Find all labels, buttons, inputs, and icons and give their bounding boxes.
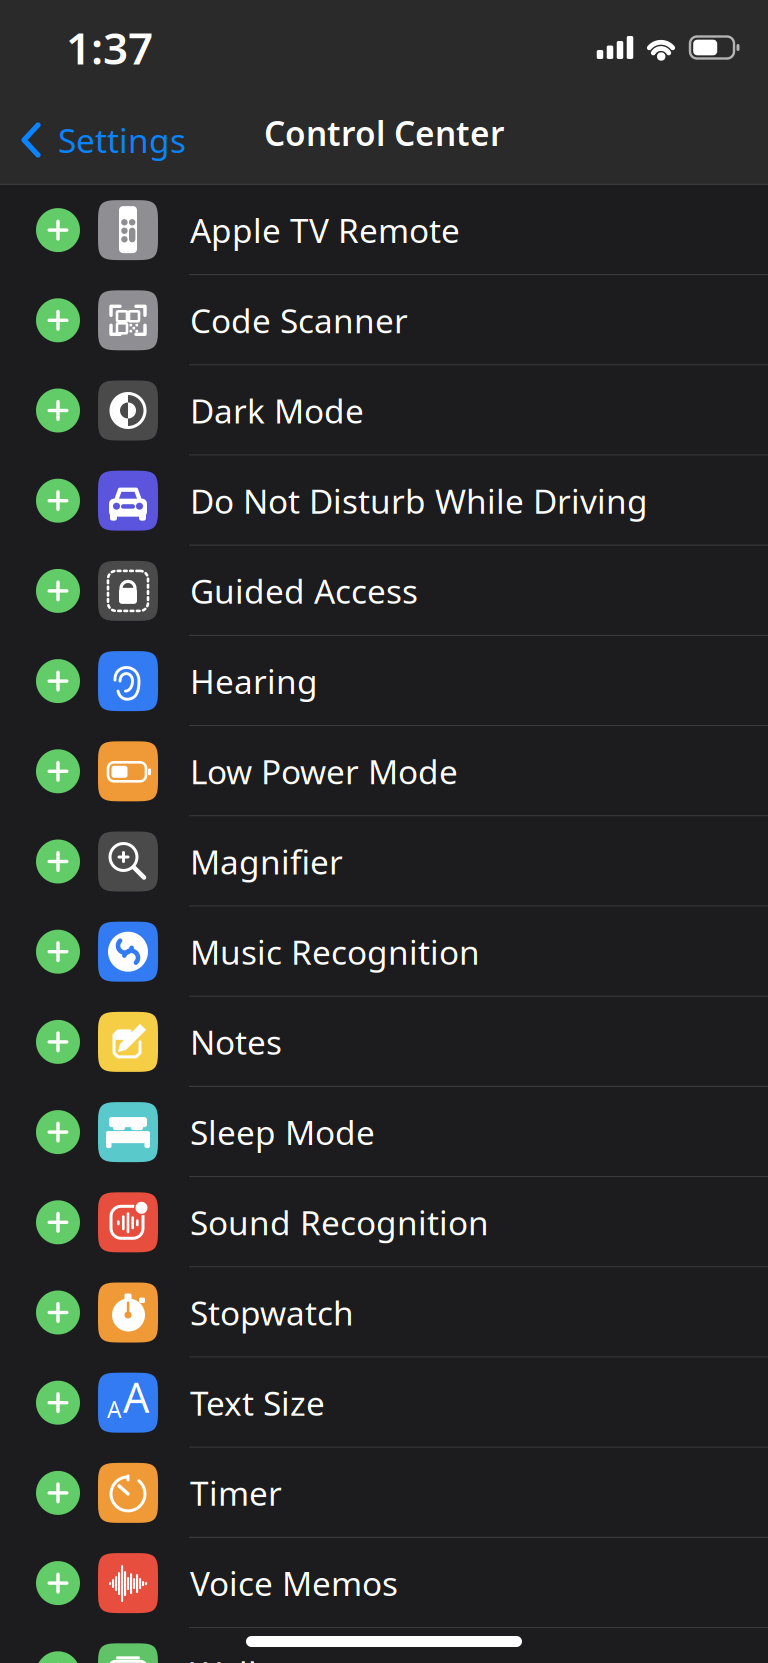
- button[interactable]: Guided Access: [0, 546, 768, 636]
- button[interactable]: Dark Mode: [0, 365, 768, 456]
- staticText: Apple TV Remote: [190, 208, 460, 252]
- staticText: Voice Memos: [190, 1561, 398, 1605]
- button[interactable]: Stopwatch: [0, 1267, 768, 1358]
- button[interactable]: Settings: [0, 95, 220, 185]
- button[interactable]: Magnifier: [0, 816, 768, 907]
- button[interactable]: Notes: [0, 997, 768, 1087]
- staticText: Timer: [190, 1471, 282, 1515]
- button[interactable]: Timer: [0, 1448, 768, 1538]
- staticText: Settings: [58, 118, 186, 162]
- staticText: Control Center: [264, 111, 504, 155]
- staticText: Music Recognition: [190, 930, 480, 974]
- staticText: Dark Mode: [190, 388, 364, 433]
- staticText: 1:37: [66, 18, 153, 77]
- staticText: Hearing: [190, 659, 318, 703]
- staticText: Sleep Mode: [190, 1110, 375, 1154]
- staticText: A: [107, 1394, 121, 1424]
- button[interactable]: Apple TV Remote: [0, 185, 768, 275]
- staticText: Magnifier: [190, 839, 343, 884]
- staticText: Text Size: [190, 1381, 325, 1425]
- button[interactable]: Hearing: [0, 636, 768, 726]
- button[interactable]: Do Not Disturb While Driving: [0, 456, 768, 546]
- staticText: Low Power Mode: [190, 749, 458, 793]
- button[interactable]: Code Scanner: [0, 275, 768, 365]
- staticText: Sound Recognition: [190, 1200, 489, 1244]
- staticText: Guided Access: [190, 569, 418, 613]
- staticText: Do Not Disturb While Driving: [190, 479, 648, 523]
- button[interactable]: Music Recognition: [0, 907, 768, 997]
- button[interactable]: Wallet: [0, 1628, 768, 1663]
- button[interactable]: A: [0, 1358, 768, 1448]
- button[interactable]: Voice Memos: [0, 1538, 768, 1628]
- button[interactable]: Sleep Mode: [0, 1087, 768, 1177]
- staticText: A: [123, 1369, 149, 1424]
- button[interactable]: Low Power Mode: [0, 726, 768, 816]
- staticText: Notes: [190, 1020, 282, 1064]
- staticText: Stopwatch: [190, 1290, 354, 1335]
- staticText: Wallet: [190, 1651, 288, 1663]
- staticText: Code Scanner: [190, 298, 408, 342]
- button[interactable]: Sound Recognition: [0, 1177, 768, 1267]
